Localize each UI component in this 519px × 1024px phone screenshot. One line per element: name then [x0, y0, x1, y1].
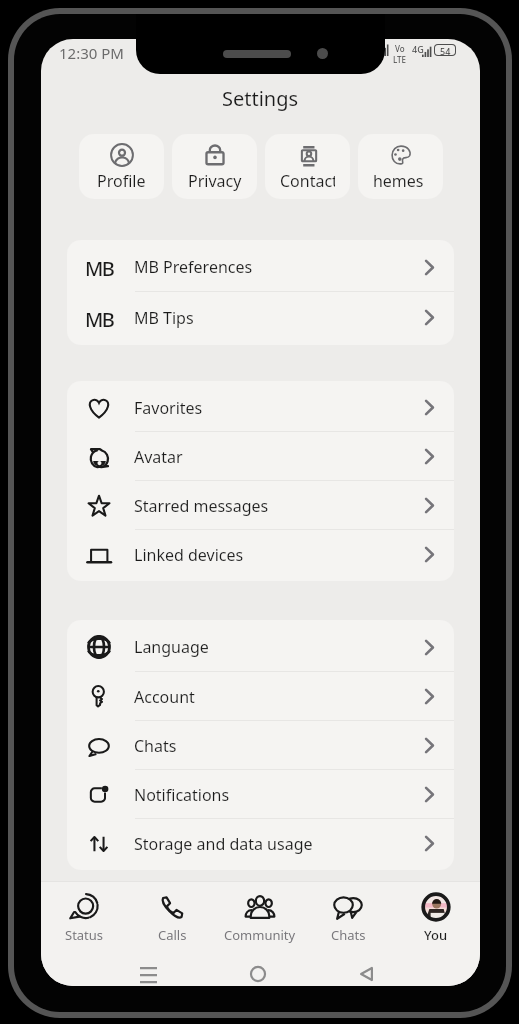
staticText: Favorites — [134, 397, 203, 419]
staticText: MB — [85, 306, 114, 330]
button[interactable]: Profile — [79, 134, 164, 199]
button[interactable]: Calls — [128, 882, 216, 944]
staticText: Themes — [373, 170, 424, 192]
staticText: Chats — [331, 926, 366, 944]
staticText: You — [424, 926, 448, 944]
button[interactable]: Chats — [67, 721, 454, 770]
button[interactable]: Community — [216, 882, 304, 944]
staticText: LTE — [393, 54, 407, 65]
button[interactable]: Back — [312, 956, 421, 986]
staticText: Linked devices — [134, 544, 244, 566]
staticText: Privacy — [188, 170, 242, 192]
staticText: 12:30 PM — [59, 43, 124, 63]
button[interactable]: MB — [67, 292, 454, 343]
staticText: Starred messages — [134, 495, 269, 517]
button[interactable]: MB — [67, 242, 454, 292]
button[interactable]: Chats — [304, 882, 392, 944]
button[interactable]: Status — [41, 882, 128, 944]
button[interactable]: Avatar — [67, 432, 454, 481]
staticText: Profile — [97, 170, 146, 192]
button[interactable]: Privacy — [172, 134, 257, 199]
button[interactable]: Home — [203, 956, 312, 986]
staticText: Storage and data usage — [134, 833, 313, 855]
button[interactable]: Language — [67, 622, 454, 672]
staticText: MB — [85, 255, 114, 279]
button[interactable]: Recent apps — [94, 956, 203, 986]
button[interactable]: Storage and data usage — [67, 819, 454, 868]
staticText: Community — [224, 926, 296, 944]
button[interactable]: Favorites — [67, 383, 454, 432]
staticText: Avatar — [134, 446, 183, 468]
staticText: Account — [134, 686, 195, 708]
staticText: 54 — [440, 45, 451, 55]
staticText: 4G — [412, 43, 424, 55]
button[interactable]: Themes — [358, 134, 443, 199]
button[interactable]: Linked devices — [67, 530, 454, 579]
button[interactable]: Notifications — [67, 770, 454, 819]
staticText: Language — [134, 636, 209, 658]
staticText: Notifications — [134, 784, 230, 806]
staticText: Contacts — [280, 170, 335, 192]
staticText: Status — [65, 926, 104, 944]
staticText: Vo — [395, 43, 405, 54]
staticText: Settings — [222, 85, 299, 112]
staticText: MB Tips — [134, 307, 194, 329]
staticText: MB Preferences — [134, 256, 253, 278]
staticText: Chats — [134, 735, 177, 757]
button[interactable]: Starred messages — [67, 481, 454, 530]
staticText: Calls — [158, 926, 187, 944]
button[interactable]: Account — [67, 672, 454, 721]
button[interactable]: You — [392, 882, 480, 944]
button[interactable]: Contacts — [265, 134, 350, 199]
